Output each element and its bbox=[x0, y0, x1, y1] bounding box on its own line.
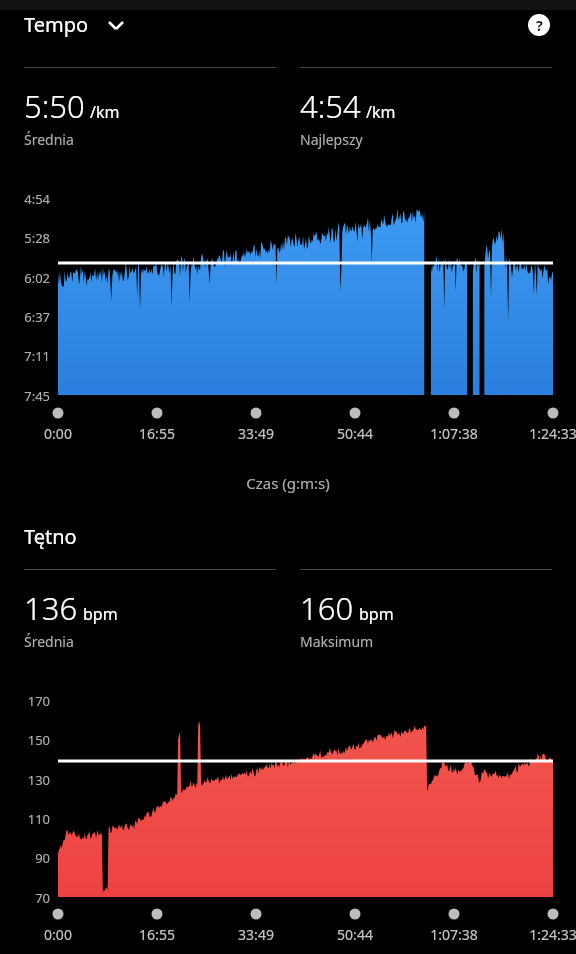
staticText: bpm bbox=[359, 603, 394, 625]
staticText: 1:24:33 bbox=[508, 424, 576, 443]
staticText: 160 bbox=[300, 587, 354, 629]
staticText: 4:54 bbox=[0, 190, 50, 208]
staticText: 5:28 bbox=[0, 229, 50, 247]
staticText: 136 bbox=[24, 587, 78, 629]
staticText: 150 bbox=[0, 731, 50, 749]
staticText: 110 bbox=[0, 810, 50, 828]
staticText: 5:50 bbox=[24, 85, 85, 127]
staticText: 4:54 bbox=[300, 85, 361, 127]
staticText: 33:49 bbox=[211, 925, 301, 944]
staticText: 50:44 bbox=[310, 925, 400, 944]
staticText: 1:24:33 bbox=[508, 925, 576, 944]
staticText: /km bbox=[90, 101, 120, 123]
staticText: Średnia bbox=[24, 130, 74, 149]
staticText: Najlepszy bbox=[300, 130, 363, 149]
staticText: 1:07:38 bbox=[409, 424, 499, 443]
button[interactable]: 4:54 bbox=[300, 67, 552, 149]
button[interactable]: Help bbox=[526, 12, 552, 38]
staticText: 70 bbox=[0, 889, 50, 907]
staticText: Tętno bbox=[24, 523, 77, 550]
staticText: ? bbox=[536, 16, 543, 35]
staticText: bpm bbox=[83, 603, 118, 625]
staticText: 170 bbox=[0, 692, 50, 710]
staticText: 0:00 bbox=[13, 424, 103, 443]
staticText: Czas (g:m:s) bbox=[0, 473, 576, 493]
staticText: /km bbox=[366, 101, 396, 123]
button[interactable]: 160 bbox=[300, 569, 552, 651]
staticText: 33:49 bbox=[211, 424, 301, 443]
staticText: 6:37 bbox=[0, 308, 50, 326]
staticText: 130 bbox=[0, 771, 50, 789]
staticText: 7:45 bbox=[0, 387, 50, 405]
staticText: Tempo bbox=[24, 11, 89, 38]
staticText: 7:11 bbox=[0, 347, 50, 365]
staticText: Maksimum bbox=[300, 632, 374, 651]
staticText: 90 bbox=[0, 849, 50, 867]
button[interactable]: 5:50 bbox=[24, 67, 276, 149]
staticText: 16:55 bbox=[112, 925, 202, 944]
staticText: 6:02 bbox=[0, 269, 50, 287]
staticText: 0:00 bbox=[13, 925, 103, 944]
staticText: Średnia bbox=[24, 632, 74, 651]
button[interactable]: Tempo bbox=[24, 11, 127, 38]
staticText: 50:44 bbox=[310, 424, 400, 443]
button[interactable]: 136 bbox=[24, 569, 276, 651]
staticText: 16:55 bbox=[112, 424, 202, 443]
staticText: 1:07:38 bbox=[409, 925, 499, 944]
